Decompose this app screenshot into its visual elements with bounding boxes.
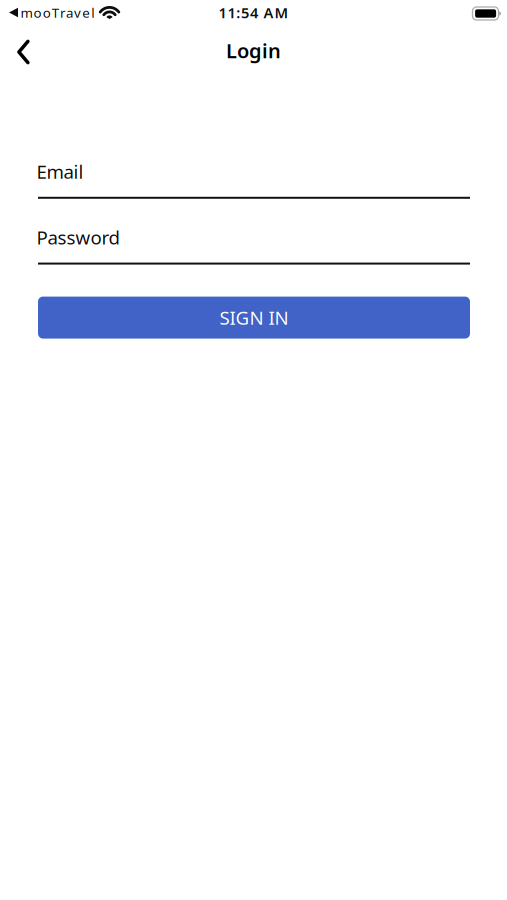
- button[interactable]: Password: [38, 225, 470, 265]
- button[interactable]: Email: [38, 159, 470, 199]
- staticText: mooTravel: [20, 4, 94, 21]
- staticText: 11:54 AM: [218, 3, 288, 22]
- staticText: Password: [36, 225, 119, 250]
- staticText: SIGN IN: [219, 305, 288, 330]
- staticText: Email: [36, 159, 83, 184]
- staticText: Login: [226, 37, 281, 64]
- button[interactable]: SIGN IN: [38, 297, 470, 339]
- button[interactable]: Back: [0, 27, 44, 77]
